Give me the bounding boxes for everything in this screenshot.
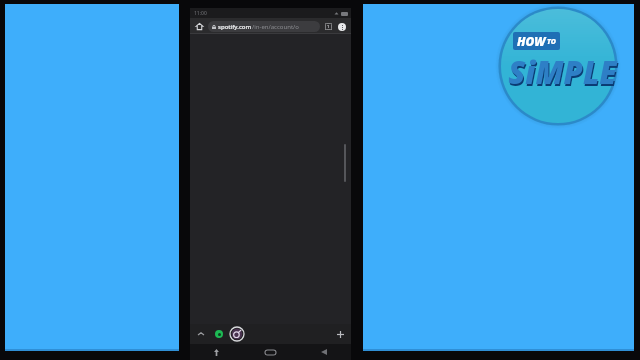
- button[interactable]: Home: [193, 20, 206, 33]
- staticText: TO: [547, 37, 556, 47]
- button[interactable]: Back: [297, 344, 351, 360]
- button[interactable]: Tabs: [322, 20, 335, 33]
- button[interactable]: More options: [335, 20, 348, 33]
- button[interactable]: Expand: [194, 327, 208, 341]
- staticText: SiMPLE: [509, 53, 618, 95]
- button[interactable]: spotify.com: [208, 21, 320, 32]
- staticText: SiMPLE: [508, 51, 617, 93]
- button[interactable]: New tab: [333, 327, 347, 341]
- staticText: /in-en/account/o: [252, 23, 299, 31]
- staticText: 1: [327, 24, 330, 29]
- staticText: spotify.com: [218, 23, 252, 31]
- staticText: 11:00: [194, 10, 207, 17]
- button[interactable]: Active tab: [229, 326, 245, 342]
- button[interactable]: Home: [243, 344, 297, 360]
- button[interactable]: Recents: [190, 344, 243, 360]
- button[interactable]: Spotify tab: [212, 327, 226, 341]
- staticText: HOW: [517, 33, 546, 49]
